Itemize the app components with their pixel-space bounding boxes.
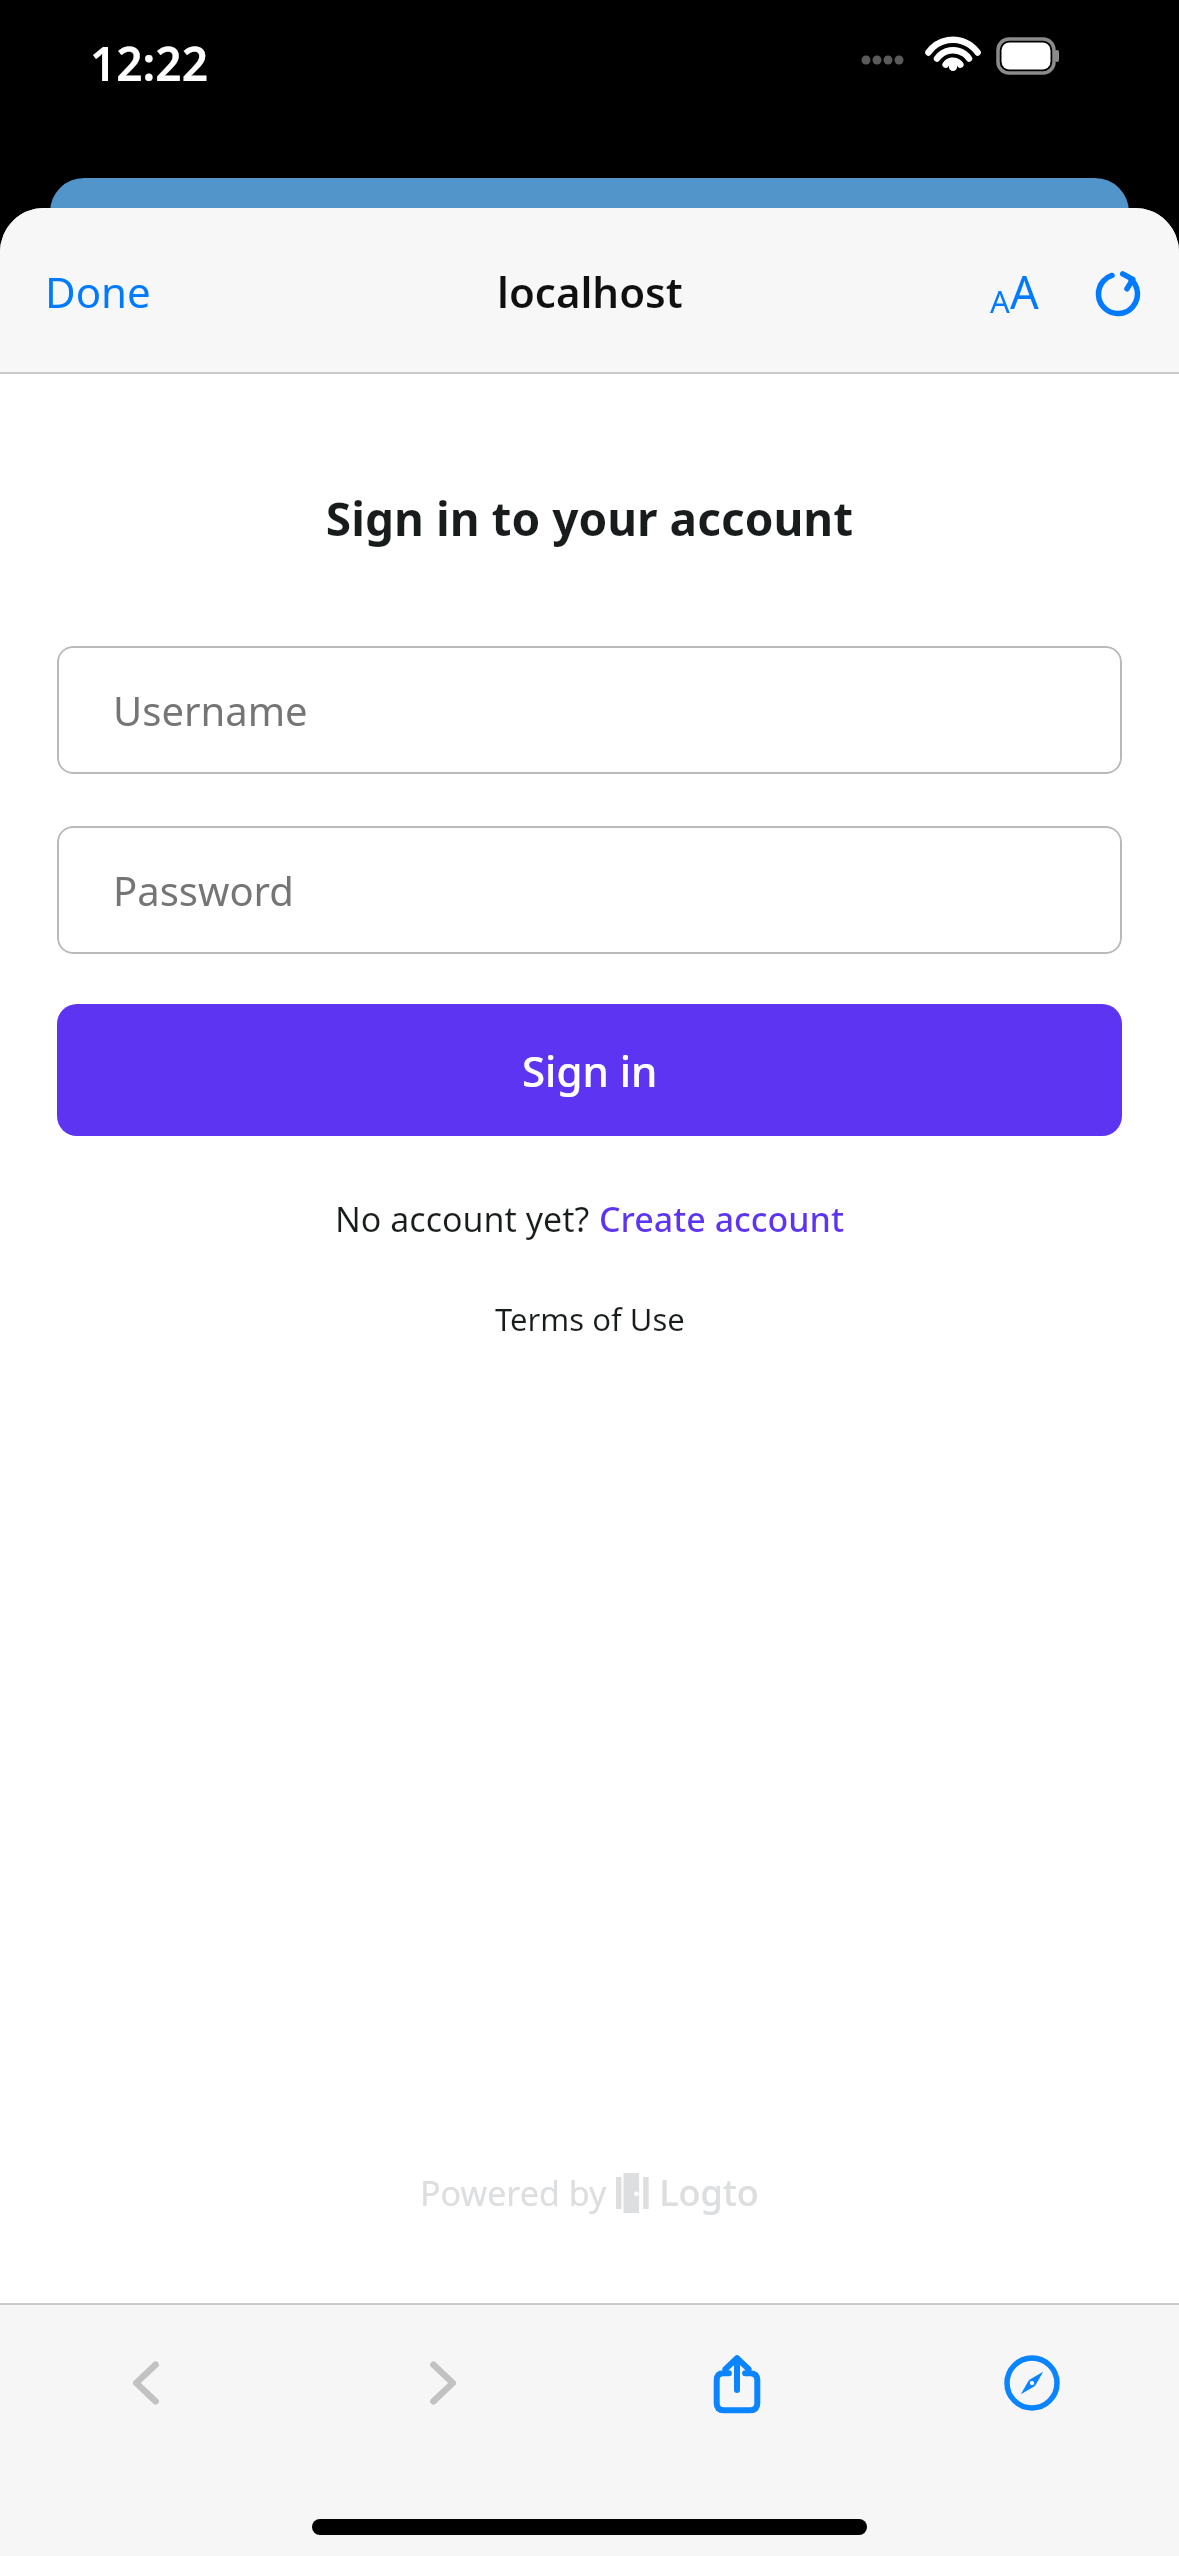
button[interactable]: Back — [0, 2305, 294, 2460]
button[interactable]: Forward — [294, 2305, 589, 2460]
button[interactable]: Terms of Use — [495, 1298, 685, 1340]
button[interactable]: Username — [57, 646, 1122, 774]
staticText: No account yet? — [335, 1196, 599, 1242]
button[interactable]: Open in Safari — [884, 2305, 1179, 2460]
staticText: Done — [45, 263, 151, 320]
staticText: Create account — [599, 1196, 844, 1242]
staticText: Username — [113, 683, 308, 737]
staticText: Powered by — [420, 2170, 616, 2216]
button[interactable]: Share — [589, 2305, 884, 2460]
staticText: Password — [113, 863, 294, 917]
button[interactable]: Create account — [599, 1196, 844, 1242]
staticText: A — [1010, 261, 1039, 322]
button[interactable]: Sign in — [57, 1004, 1122, 1136]
staticText: Sign in — [522, 1042, 658, 1099]
staticText: Logto — [650, 2168, 759, 2217]
staticText: 12:22 — [90, 32, 208, 95]
button[interactable]: Done — [24, 245, 172, 338]
staticText: Terms of Use — [495, 1298, 685, 1340]
staticText: localhost — [497, 263, 683, 320]
staticText: Sign in to your account — [0, 487, 1179, 550]
button[interactable]: Text size options — [974, 247, 1055, 336]
button[interactable]: Password — [57, 826, 1122, 954]
button[interactable]: Reload page — [1077, 251, 1159, 333]
staticText: A — [990, 280, 1010, 322]
